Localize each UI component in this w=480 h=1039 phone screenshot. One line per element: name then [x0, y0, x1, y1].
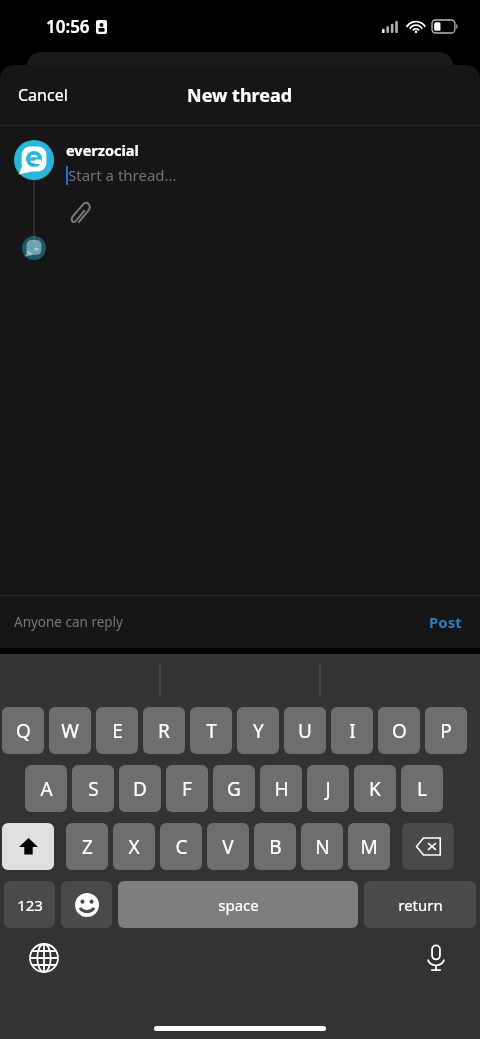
staticText: B [269, 834, 282, 860]
staticText: space [218, 895, 259, 915]
button[interactable]: T [190, 707, 232, 754]
staticText: Start a thread... [68, 165, 177, 185]
button[interactable]: R [143, 707, 185, 754]
staticText: return [398, 895, 443, 915]
button[interactable]: P [425, 707, 467, 754]
staticText: W [61, 718, 79, 744]
staticText: A [40, 776, 53, 802]
staticText: F [182, 776, 192, 802]
button[interactable]: H [260, 765, 302, 812]
button[interactable]: Z [66, 823, 108, 870]
button[interactable]: A [25, 765, 67, 812]
staticText: V [222, 834, 234, 860]
button[interactable]: Attach media [66, 199, 94, 231]
staticText: N [315, 834, 330, 860]
button[interactable]: Shift [2, 823, 54, 870]
staticText: O [392, 718, 407, 744]
staticText: X [128, 834, 140, 860]
button[interactable]: S [72, 765, 114, 812]
button[interactable]: Delete [402, 823, 454, 870]
staticText: G [227, 776, 241, 802]
button[interactable]: U [284, 707, 326, 754]
button[interactable]: N [301, 823, 343, 870]
button[interactable]: I [331, 707, 373, 754]
button[interactable]: W [49, 707, 91, 754]
staticText: I [349, 718, 356, 744]
staticText: P [440, 718, 452, 744]
button[interactable]: 123 [4, 881, 55, 928]
staticText: everzocial [66, 140, 139, 160]
staticText: E [112, 718, 123, 744]
button[interactable]: Q [2, 707, 44, 754]
staticText: J [325, 776, 331, 802]
button[interactable]: G [213, 765, 255, 812]
button[interactable]: F [166, 765, 208, 812]
staticText: D [133, 776, 147, 802]
button[interactable]: Emoji [61, 881, 112, 928]
staticText: S [88, 776, 99, 802]
button[interactable]: D [119, 765, 161, 812]
button[interactable]: Post [417, 604, 474, 640]
button[interactable]: B [254, 823, 296, 870]
staticText: U [298, 718, 312, 744]
staticText: L [417, 776, 427, 802]
button[interactable]: L [401, 765, 443, 812]
staticText: Q [16, 718, 31, 744]
button[interactable]: Dictate [414, 936, 458, 980]
staticText: New thread [187, 83, 293, 108]
button[interactable]: Y [237, 707, 279, 754]
staticText: Cancel [18, 84, 68, 106]
button[interactable]: X [113, 823, 155, 870]
staticText: C [175, 834, 188, 860]
button[interactable]: O [378, 707, 420, 754]
staticText: Post [429, 612, 462, 632]
staticText: Z [82, 834, 93, 860]
staticText: K [369, 776, 381, 802]
staticText: T [206, 718, 217, 744]
staticText: H [274, 776, 289, 802]
button[interactable]: K [354, 765, 396, 812]
button[interactable]: V [207, 823, 249, 870]
button[interactable]: Change keyboard [22, 936, 66, 980]
staticText: M [360, 834, 378, 860]
button[interactable]: Cancel [6, 76, 80, 114]
button[interactable]: return [364, 881, 476, 928]
staticText: Y [253, 718, 264, 744]
staticText: R [158, 718, 170, 744]
staticText: Anyone can reply [14, 613, 123, 631]
button[interactable]: E [96, 707, 138, 754]
button[interactable]: J [307, 765, 349, 812]
staticText: 10:56 [46, 15, 90, 38]
staticText: 123 [17, 895, 43, 915]
button[interactable]: C [160, 823, 202, 870]
button[interactable]: M [348, 823, 390, 870]
button[interactable]: space [118, 881, 358, 928]
